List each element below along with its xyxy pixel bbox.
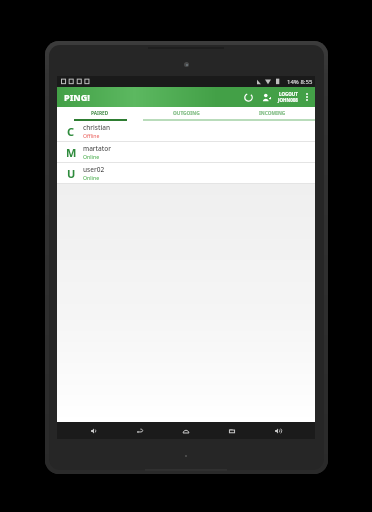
button[interactable]: Home: [163, 422, 209, 439]
staticText: INCOMING: [259, 110, 286, 117]
staticText: M: [66, 145, 77, 160]
staticText: U: [67, 166, 76, 181]
button[interactable]: Back: [117, 422, 163, 439]
button[interactable]: PAIRED: [57, 107, 143, 119]
staticText: Online: [83, 174, 100, 181]
button[interactable]: Volume up: [255, 422, 301, 439]
staticText: martator: [83, 144, 112, 153]
button[interactable]: Refresh: [239, 88, 257, 106]
button[interactable]: More options: [301, 87, 313, 107]
button[interactable]: U: [57, 163, 315, 184]
staticText: JOHN008: [278, 97, 298, 103]
staticText: OUTGOING: [173, 110, 200, 117]
button[interactable]: LOGOUT: [275, 89, 301, 105]
button[interactable]: Recents: [209, 422, 255, 439]
staticText: LOGOUT: [279, 91, 298, 97]
button[interactable]: Volume down: [71, 422, 117, 439]
staticText: Online: [83, 153, 100, 160]
staticText: PING!: [64, 91, 90, 103]
button[interactable]: INCOMING: [229, 107, 315, 119]
staticText: 14% 8:55: [287, 78, 313, 86]
staticText: christian: [83, 123, 110, 132]
button[interactable]: M: [57, 142, 315, 163]
staticText: PAIRED: [91, 110, 109, 117]
button[interactable]: Add contact: [257, 88, 275, 106]
staticText: user02: [83, 165, 105, 174]
button[interactable]: OUTGOING: [143, 107, 229, 119]
staticText: C: [67, 124, 75, 139]
button[interactable]: C: [57, 121, 315, 142]
staticText: Offline: [83, 132, 100, 139]
